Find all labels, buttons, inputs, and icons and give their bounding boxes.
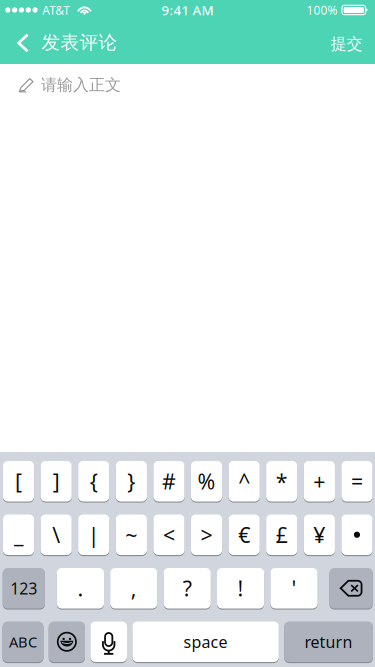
staticText: * (276, 467, 288, 495)
staticText: ' (291, 574, 296, 602)
button[interactable]: ^ (229, 461, 260, 501)
staticText: | (88, 521, 100, 549)
button[interactable]: + (304, 461, 335, 501)
button[interactable]: \ (41, 514, 72, 555)
staticText: ? (183, 574, 192, 602)
staticText: > (201, 521, 213, 549)
staticText: ¥ (313, 521, 325, 549)
button[interactable]: Emoji (49, 621, 85, 662)
button[interactable]: return (284, 621, 373, 662)
staticText: € (238, 521, 250, 549)
button[interactable]: ~ (116, 514, 147, 555)
button[interactable]: | (78, 514, 109, 555)
button[interactable]: 123 (3, 568, 45, 608)
staticText: space (184, 631, 228, 652)
staticText: ~ (125, 521, 137, 549)
button[interactable]: * (266, 461, 297, 501)
button[interactable]: space (132, 621, 279, 662)
staticText: , (131, 574, 137, 602)
staticText: _ (14, 521, 23, 549)
staticText: { (90, 467, 98, 495)
button[interactable]: > (191, 514, 222, 555)
staticText: ! (238, 574, 244, 602)
button[interactable]: ' (270, 568, 318, 608)
button[interactable]: 提交 (316, 20, 375, 64)
staticText: 123 (10, 578, 37, 599)
button[interactable]: £ (266, 514, 297, 555)
button[interactable]: ! (217, 568, 264, 608)
staticText: ABC (9, 632, 37, 651)
button[interactable]: [ (3, 461, 34, 501)
button[interactable]: { (78, 461, 109, 501)
staticText: + (313, 467, 325, 495)
staticText: return (305, 631, 353, 652)
button[interactable]: = (341, 461, 373, 501)
button[interactable]: < (153, 514, 185, 555)
staticText: AT&T (42, 2, 70, 18)
button[interactable]: . (57, 568, 104, 608)
staticText: # (162, 467, 176, 495)
staticText: \ (52, 521, 60, 549)
staticText: 提交 (331, 34, 363, 54)
button[interactable]: Bullet (341, 514, 373, 555)
staticText: % (198, 467, 216, 495)
staticText: ^ (238, 467, 250, 495)
staticText: £ (276, 521, 288, 549)
button[interactable]: ¥ (304, 514, 335, 555)
staticText: } (127, 467, 135, 495)
staticText: 请输入正文 (41, 75, 121, 95)
staticText: < (163, 521, 175, 549)
button[interactable]: , (110, 568, 157, 608)
staticText: 100% (306, 2, 337, 18)
button[interactable]: _ (3, 514, 34, 555)
button[interactable]: % (191, 461, 222, 501)
button[interactable]: ? (164, 568, 211, 608)
staticText: = (351, 467, 363, 495)
staticText: [ (15, 467, 22, 495)
button[interactable]: Dictate (90, 621, 127, 662)
staticText: 发表评论 (42, 31, 118, 54)
staticText: ] (53, 467, 60, 495)
button[interactable]: Back (0, 20, 42, 64)
button[interactable]: € (229, 514, 260, 555)
button[interactable]: ] (41, 461, 72, 501)
button[interactable]: Delete (329, 568, 373, 608)
staticText: 9:41 AM (161, 1, 213, 19)
button[interactable]: } (116, 461, 147, 501)
button[interactable]: # (153, 461, 185, 501)
staticText: . (77, 574, 83, 602)
button[interactable]: ABC (2, 621, 43, 662)
